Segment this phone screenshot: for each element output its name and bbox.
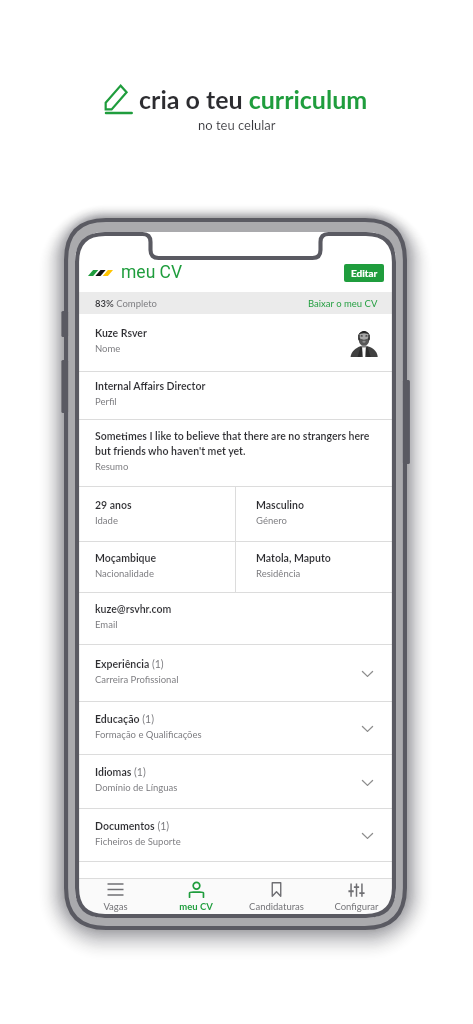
button[interactable]: Idiomas (1)	[75, 755, 396, 808]
staticText: Kuze Rsver	[95, 327, 147, 340]
staticText: Carreira Profissional	[95, 674, 179, 685]
staticText: Email	[95, 619, 118, 630]
staticText: meu CV	[179, 901, 213, 912]
other: Expandir Educação	[362, 720, 373, 736]
button[interactable]: Vagas	[75, 879, 156, 918]
staticText: kuze@rsvhr.com	[95, 603, 172, 616]
button[interactable]: Candidaturas	[236, 879, 316, 918]
button[interactable]: Experiência (1)	[75, 645, 396, 701]
staticText: Editar	[351, 267, 378, 279]
staticText: Sometimes I like to believe that there a…	[95, 430, 370, 458]
staticText: no teu celular	[198, 117, 276, 133]
staticText: Educação (1)	[95, 713, 154, 726]
staticText: Experiência (1)	[95, 658, 164, 671]
button[interactable]: Baixar o meu CV	[308, 298, 378, 309]
staticText: Residência	[256, 568, 301, 579]
staticText: cria o teu curriculum	[139, 84, 368, 114]
staticText: Moçambique	[95, 552, 157, 565]
staticText: Resumo	[95, 461, 129, 472]
button[interactable]: Kuze Rsver	[75, 314, 396, 371]
staticText: Nacionalidade	[95, 568, 154, 579]
button[interactable]: Matola, Maputo	[236, 542, 396, 592]
staticText: Domínio de Línguas	[95, 782, 178, 793]
button[interactable]: Internal Affairs Director	[75, 372, 396, 419]
staticText: 83% Completo	[95, 298, 158, 309]
button[interactable]: Documentos (1)	[75, 809, 396, 861]
button[interactable]: 29 anos	[75, 487, 235, 541]
other: Expandir Experiência	[362, 665, 373, 681]
staticText: Nome	[95, 343, 121, 354]
staticText: Perfil	[95, 396, 117, 407]
staticText: Idade	[95, 515, 118, 526]
staticText: Género	[256, 515, 287, 526]
button[interactable]: kuze@rsvhr.com	[75, 593, 396, 644]
staticText: Matola, Maputo	[256, 552, 331, 565]
staticText: Candidaturas	[249, 901, 304, 912]
button[interactable]: Sometimes I like to believe that there a…	[75, 420, 396, 486]
staticText: meu CV	[121, 262, 183, 283]
staticText: Vagas	[103, 901, 128, 912]
button[interactable]: Configurar	[316, 879, 396, 918]
staticText: Configurar	[334, 901, 379, 912]
staticText: Formação e Qualificações	[95, 729, 202, 740]
other: Expandir Idiomas	[362, 774, 373, 790]
staticText: 29 anos	[95, 499, 132, 512]
staticText: Idiomas (1)	[95, 766, 146, 779]
button[interactable]: Masculino	[236, 487, 396, 541]
button[interactable]: Educação (1)	[75, 702, 396, 754]
staticText: Ficheiros de Suporte	[95, 836, 181, 847]
button[interactable]: Editar	[344, 264, 384, 282]
staticText: Documentos (1)	[95, 820, 170, 833]
button[interactable]: Moçambique	[75, 542, 235, 592]
other: Expandir Documentos	[362, 827, 373, 843]
button[interactable]: meu CV	[156, 879, 236, 918]
staticText: Internal Affairs Director	[95, 380, 206, 393]
staticText: Masculino	[256, 499, 304, 512]
